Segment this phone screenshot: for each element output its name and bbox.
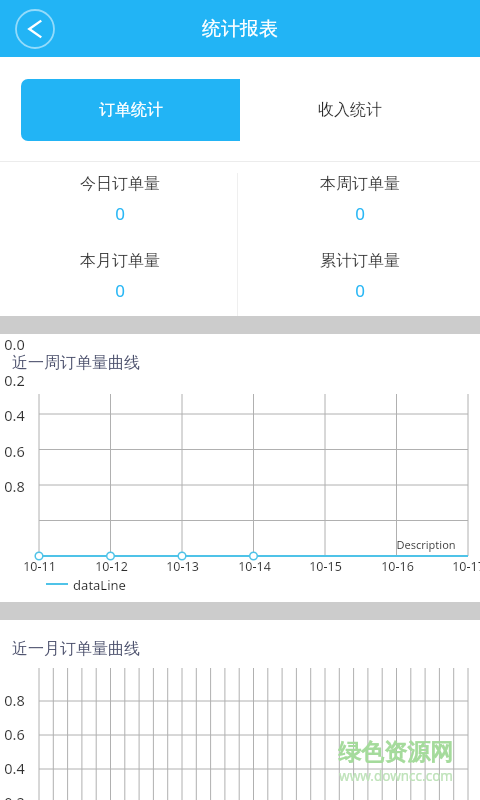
- button[interactable]: 订单统计: [21, 79, 240, 141]
- staticText: 本月订单量: [80, 251, 160, 271]
- staticText: 0.8: [4, 476, 25, 496]
- staticText: 收入统计: [318, 100, 382, 120]
- button[interactable]: 本月订单量: [0, 239, 240, 316]
- staticText: 10-11: [23, 558, 56, 575]
- staticText: 绿色资源网: [338, 738, 453, 767]
- staticText: 统计报表: [202, 17, 278, 41]
- staticText: 近一月订单量曲线: [12, 639, 140, 659]
- button[interactable]: 收入统计: [240, 79, 459, 141]
- staticText: 0.6: [4, 724, 25, 744]
- staticText: 0.4: [4, 405, 25, 425]
- staticText: 本周订单量: [320, 174, 400, 194]
- staticText: 0: [355, 202, 365, 225]
- staticText: dataLine: [73, 576, 126, 594]
- staticText: 订单统计: [99, 100, 163, 120]
- staticText: 0.6: [4, 441, 25, 461]
- staticText: www.downcc.com: [339, 767, 453, 785]
- button[interactable]: 今日订单量: [0, 162, 240, 239]
- staticText: 0: [355, 279, 365, 302]
- staticText: 10-16: [381, 558, 414, 575]
- staticText: 10-12: [95, 558, 128, 575]
- staticText: 0: [115, 202, 125, 225]
- staticText: 0: [115, 279, 125, 302]
- staticText: 10-15: [309, 558, 342, 575]
- staticText: 10-13: [166, 558, 199, 575]
- staticText: Description: [396, 537, 456, 552]
- staticText: 10-14: [238, 558, 271, 575]
- staticText: 0.8: [4, 690, 25, 710]
- button[interactable]: 本周订单量: [240, 162, 480, 239]
- button[interactable]: 累计订单量: [240, 239, 480, 316]
- staticText: 10-17: [452, 558, 480, 575]
- staticText: 近一周订单量曲线: [12, 353, 140, 373]
- staticText: 0.2: [4, 792, 25, 800]
- staticText: 0.4: [4, 758, 25, 778]
- staticText: 0.2: [4, 370, 25, 390]
- staticText: 0.0: [4, 334, 25, 354]
- staticText: 今日订单量: [80, 174, 160, 194]
- staticText: 累计订单量: [320, 251, 400, 271]
- button[interactable]: Back: [14, 8, 56, 50]
